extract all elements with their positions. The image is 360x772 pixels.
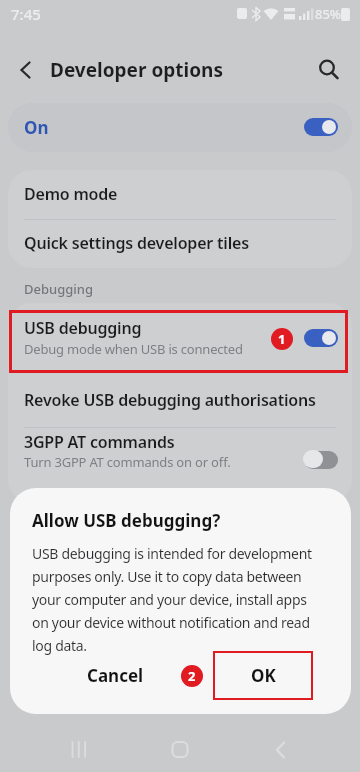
staticText: Demo mode: [24, 183, 118, 205]
staticText: Quick settings developer tiles: [24, 232, 249, 254]
staticText: Cancel: [87, 664, 144, 687]
staticText: 7:45: [11, 4, 41, 24]
staticText: Developer options: [50, 57, 223, 83]
button[interactable]: [304, 118, 338, 136]
staticText: your computer and your device, install a…: [32, 590, 307, 609]
staticText: Revoke USB debugging authorisations: [24, 389, 316, 411]
staticText: OK: [251, 664, 276, 687]
button[interactable]: [304, 451, 338, 469]
button[interactable]: [258, 735, 298, 765]
staticText: purposes only. Use it to copy data betwe…: [32, 567, 302, 586]
button[interactable]: [160, 735, 200, 765]
staticText: USB debugging is intended for developmen…: [32, 544, 312, 563]
staticText: Allow USB debugging?: [32, 509, 221, 532]
staticText: USB debugging: [24, 317, 142, 339]
staticText: 2: [188, 667, 196, 685]
staticText: on your device without notification and …: [32, 613, 310, 632]
button[interactable]: [8, 428, 352, 488]
staticText: log data.: [32, 636, 87, 655]
button[interactable]: [8, 219, 352, 268]
button[interactable]: [315, 55, 345, 85]
staticText: 85%: [315, 5, 341, 23]
staticText: 3GPP AT commands: [24, 431, 175, 453]
button[interactable]: [8, 103, 352, 152]
button[interactable]: [8, 375, 352, 427]
staticText: Turn 3GPP AT commands on or off.: [24, 453, 231, 471]
button[interactable]: [8, 170, 352, 219]
staticText: Debugging: [24, 280, 94, 298]
button[interactable]: Cancel: [60, 648, 170, 702]
button[interactable]: [8, 310, 352, 373]
button[interactable]: OK: [208, 648, 318, 702]
staticText: 1: [278, 330, 286, 348]
button[interactable]: [10, 56, 40, 86]
button[interactable]: [304, 329, 338, 347]
staticText: On: [24, 116, 49, 139]
button[interactable]: [60, 735, 100, 765]
staticText: Debug mode when USB is connected: [24, 340, 243, 358]
